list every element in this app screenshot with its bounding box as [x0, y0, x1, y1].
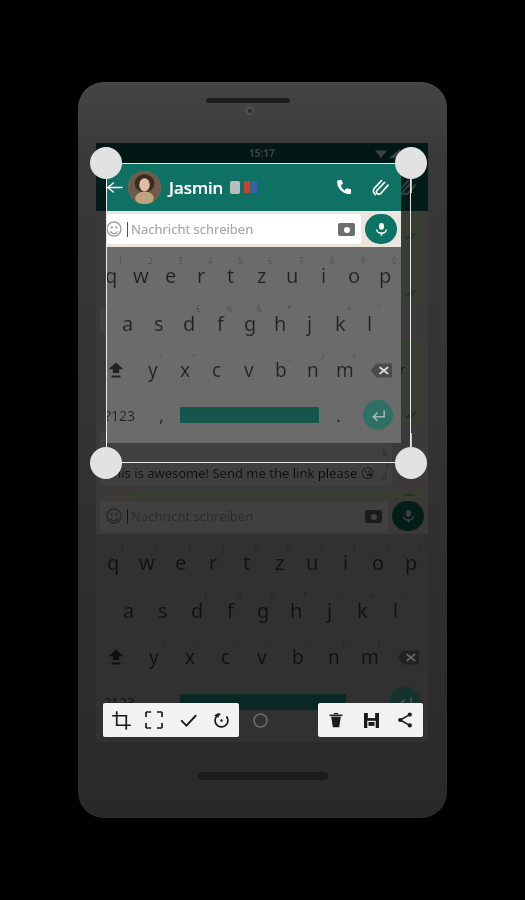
button[interactable]: Crop: [105, 704, 137, 736]
button[interactable]: Save: [355, 704, 387, 736]
button[interactable]: s: [143, 299, 174, 347]
button[interactable]: q: [106, 251, 126, 299]
button[interactable]: o: [339, 251, 370, 299]
button[interactable]: m: [352, 634, 388, 680]
button[interactable]: Crop handle: [395, 447, 427, 479]
button[interactable]: i: [329, 538, 362, 586]
button[interactable]: Nachricht schreiben: [100, 501, 388, 531]
button[interactable]: f: [205, 299, 235, 347]
button[interactable]: u: [277, 251, 308, 299]
button[interactable]: y: [136, 634, 172, 680]
button[interactable]: Delete: [320, 704, 352, 736]
button[interactable]: Select all: [138, 704, 170, 736]
button[interactable]: n: [316, 634, 352, 680]
button[interactable]: Voice message: [365, 214, 397, 244]
button[interactable]: x: [169, 347, 201, 393]
button[interactable]: z: [246, 251, 277, 299]
button[interactable]: w: [126, 251, 156, 299]
button[interactable]: g: [235, 299, 265, 347]
button[interactable]: Backspace: [361, 347, 401, 393]
button[interactable]: h: [280, 586, 313, 634]
button[interactable]: Camera: [338, 223, 355, 236]
button[interactable]: Back: [106, 175, 126, 199]
button[interactable]: b: [280, 634, 316, 680]
button[interactable]: f: [214, 586, 247, 634]
button[interactable]: l: [355, 299, 385, 347]
button[interactable]: Back: [106, 163, 401, 211]
button[interactable]: Nachricht schreiben: [106, 214, 361, 244]
button[interactable]: b: [265, 347, 297, 393]
button[interactable]: e: [164, 538, 197, 586]
button[interactable]: Share: [389, 704, 421, 736]
button[interactable]: q: [96, 538, 130, 586]
button[interactable]: t: [230, 538, 263, 586]
staticText: What's that?: [106, 312, 181, 330]
button[interactable]: o: [362, 538, 395, 586]
button[interactable]: Call: [356, 172, 386, 202]
button[interactable]: Shift: [96, 634, 136, 680]
button[interactable]: Undo: [205, 704, 237, 736]
button[interactable]: d: [180, 586, 214, 634]
button[interactable]: Call: [329, 172, 359, 202]
button[interactable]: v: [244, 634, 280, 680]
button[interactable]: Camera: [365, 510, 382, 523]
button[interactable]: r: [197, 538, 230, 586]
button[interactable]: Check out this new app Screenshot Crop &…: [132, 250, 422, 303]
button[interactable]: Back: [102, 175, 126, 199]
button[interactable]: r: [186, 251, 216, 299]
button[interactable]: Apply: [172, 704, 204, 736]
button[interactable]: a: [112, 586, 146, 634]
button[interactable]: p: [395, 538, 428, 586]
button[interactable]: u: [296, 538, 329, 586]
button[interactable]: Enter: [390, 687, 420, 717]
button[interactable]: n: [297, 347, 329, 393]
button[interactable]: .: [348, 680, 382, 724]
button[interactable]: ,: [144, 680, 178, 724]
button[interactable]: e: [156, 251, 186, 299]
button[interactable]: p: [370, 251, 401, 299]
button[interactable]: Hey babe: [309, 220, 422, 246]
button[interactable]: ,: [144, 393, 178, 437]
button[interactable]: x: [172, 634, 208, 680]
button[interactable]: Attach: [365, 172, 395, 202]
button[interactable]: This is awesome! Send me the link please…: [100, 430, 392, 486]
button[interactable]: Crop handle: [395, 147, 427, 179]
button[interactable]: t: [216, 251, 246, 299]
button[interactable]: ?123: [96, 680, 144, 724]
button[interactable]: Backspace: [388, 634, 428, 680]
button[interactable]: Space: [180, 694, 346, 710]
button[interactable]: This app opens an overlay after creating…: [132, 340, 422, 425]
staticText: 15:11: [379, 287, 403, 299]
button[interactable]: Shift: [106, 347, 136, 393]
button[interactable]: z: [263, 538, 296, 586]
button[interactable]: Attach: [392, 172, 422, 202]
button[interactable]: k: [325, 299, 355, 347]
button[interactable]: i: [308, 251, 339, 299]
staticText: 7: [319, 542, 324, 553]
button[interactable]: a: [112, 299, 143, 347]
button[interactable]: c: [208, 634, 244, 680]
button[interactable]: j: [295, 299, 325, 347]
button[interactable]: What's that?: [100, 308, 218, 334]
button[interactable]: k: [346, 586, 379, 634]
button[interactable]: ?123: [106, 393, 144, 437]
button[interactable]: y: [136, 347, 169, 393]
button[interactable]: v: [233, 347, 265, 393]
button[interactable]: m: [329, 347, 361, 393]
button[interactable]: Back: [96, 163, 428, 211]
button[interactable]: Enter: [363, 400, 393, 430]
button[interactable]: w: [130, 538, 164, 586]
button[interactable]: l: [379, 586, 412, 634]
button[interactable]: s: [146, 586, 180, 634]
button[interactable]: Voice message: [392, 501, 424, 531]
button[interactable]: d: [174, 299, 205, 347]
button[interactable]: .: [321, 393, 355, 437]
button[interactable]: g: [247, 586, 280, 634]
button[interactable]: Crop handle: [90, 147, 122, 179]
button[interactable]: j: [313, 586, 346, 634]
button[interactable]: h: [265, 299, 295, 347]
button[interactable]: c: [201, 347, 233, 393]
button[interactable]: Crop handle: [90, 447, 122, 479]
